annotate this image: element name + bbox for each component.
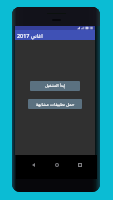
staticText: اغاني 2017 [17, 32, 43, 39]
staticText: حمل تطبيقات مشابهة [36, 101, 75, 107]
button[interactable]: حمل تطبيقات مشابهة [28, 99, 82, 109]
button[interactable]: Home [51, 159, 63, 171]
staticText: إبدأ التشغيل [45, 83, 66, 89]
button[interactable]: إبدأ التشغيل [30, 81, 80, 91]
button[interactable]: اغاني 2017 [15, 30, 95, 40]
button[interactable]: Recent apps [74, 159, 86, 171]
button[interactable]: Back [27, 159, 39, 171]
